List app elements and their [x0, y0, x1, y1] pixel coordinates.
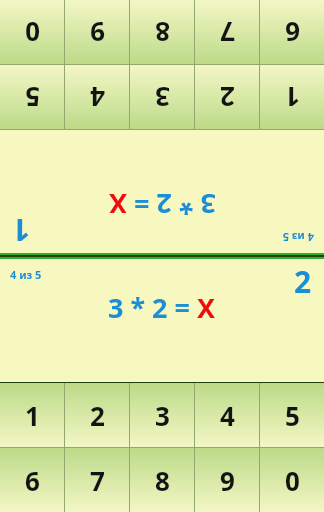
- staticText: 5: [25, 80, 40, 115]
- staticText: 4: [220, 398, 235, 433]
- staticText: 2: [220, 80, 235, 115]
- button[interactable]: 6: [260, 0, 324, 64]
- button[interactable]: 1: [260, 65, 324, 129]
- button[interactable]: 0: [260, 448, 324, 512]
- button[interactable]: 2: [195, 65, 259, 129]
- staticText: 7: [220, 15, 235, 50]
- button[interactable]: 7: [195, 0, 259, 64]
- button[interactable]: 0: [0, 0, 64, 64]
- staticText: 4 из 5: [282, 230, 314, 245]
- staticText: 7: [90, 463, 105, 498]
- staticText: 6: [285, 15, 300, 50]
- staticText: 2: [294, 261, 312, 302]
- staticText: 1: [12, 210, 30, 251]
- button[interactable]: 6: [0, 448, 64, 512]
- staticText: 9: [90, 15, 105, 50]
- staticText: 4: [90, 80, 105, 115]
- staticText: 2: [90, 398, 105, 433]
- button[interactable]: 8: [130, 448, 194, 512]
- staticText: 6: [25, 463, 40, 498]
- button[interactable]: 8: [130, 0, 194, 64]
- staticText: 8: [155, 463, 170, 498]
- staticText: 3: [155, 80, 170, 115]
- button[interactable]: 4: [65, 65, 129, 129]
- staticText: 8: [155, 15, 170, 50]
- staticText: 9: [220, 463, 235, 498]
- button[interactable]: 2: [65, 383, 129, 447]
- staticText: 4 из 5: [10, 267, 42, 282]
- staticText: 3 * 2 = X: [108, 186, 216, 223]
- button[interactable]: 3: [130, 383, 194, 447]
- staticText: 3: [155, 398, 170, 433]
- button[interactable]: 1: [0, 383, 64, 447]
- staticText: 5: [285, 398, 300, 433]
- staticText: 3 * 2 = X: [108, 289, 216, 326]
- button[interactable]: 9: [195, 448, 259, 512]
- button[interactable]: 7: [65, 448, 129, 512]
- button[interactable]: 9: [65, 0, 129, 64]
- staticText: 1: [285, 80, 300, 115]
- button[interactable]: 3: [130, 65, 194, 129]
- staticText: 0: [285, 463, 300, 498]
- staticText: 1: [25, 398, 40, 433]
- button[interactable]: 5: [260, 383, 324, 447]
- staticText: 0: [25, 15, 40, 50]
- button[interactable]: 5: [0, 65, 64, 129]
- button[interactable]: 4: [195, 383, 259, 447]
